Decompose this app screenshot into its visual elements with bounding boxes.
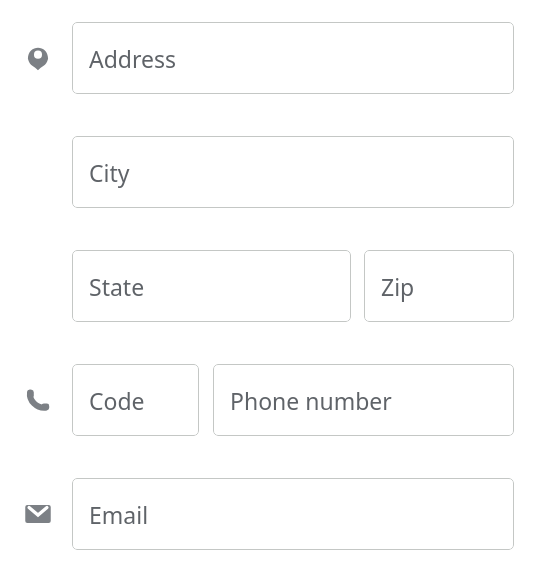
staticText: Zip xyxy=(381,271,415,302)
button[interactable]: City xyxy=(72,136,514,208)
button[interactable]: Zip xyxy=(364,250,514,322)
button[interactable]: Phone number xyxy=(213,364,514,436)
button[interactable]: Email xyxy=(72,478,514,550)
button[interactable]: Email xyxy=(24,500,52,528)
button[interactable]: State xyxy=(72,250,351,322)
staticText: State xyxy=(89,271,145,302)
button[interactable]: Address xyxy=(72,22,514,94)
button[interactable]: Address location xyxy=(24,44,52,72)
staticText: Address xyxy=(89,43,177,74)
staticText: Phone number xyxy=(230,385,392,416)
staticText: Email xyxy=(89,499,149,530)
button[interactable]: Phone xyxy=(24,386,52,414)
button[interactable]: Code xyxy=(72,364,199,436)
staticText: Code xyxy=(89,385,145,416)
staticText: City xyxy=(89,157,130,188)
